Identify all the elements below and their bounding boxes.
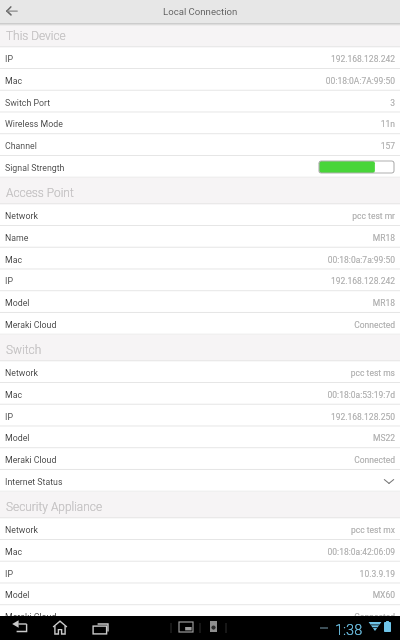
staticText: Mac [5,390,23,400]
button[interactable]: Back [2,0,24,23]
staticText: Network [5,211,38,221]
staticText: Network [5,368,38,378]
staticText: MS22 [0,433,395,443]
button[interactable]: IP [0,269,400,291]
staticText: MR18 [0,233,395,243]
staticText: 00:18:0a:42:06:09 [0,547,395,557]
staticText: Meraki Cloud [5,320,57,330]
staticText: This Device [6,29,66,43]
staticText: IP [5,276,13,286]
staticText: 10.3.9.19 [0,569,395,579]
staticText: Mac [5,547,23,557]
staticText: IP [5,54,13,64]
staticText: Connected [0,612,395,616]
button[interactable]: Meraki Cloud [0,605,400,616]
button[interactable]: Home [48,618,72,638]
button[interactable]: Name [0,226,400,248]
staticText: Channel [5,141,37,151]
staticText: Local Connection [163,6,238,17]
button[interactable]: Meraki Cloud [0,313,400,335]
staticText: Wireless Mode [5,119,63,129]
staticText: pcc test ms [0,368,395,378]
button[interactable]: Internet Status [0,470,400,492]
button[interactable]: Mac [0,383,400,405]
button[interactable]: Network [0,204,400,226]
staticText: Mac [5,255,23,265]
button[interactable]: Recent apps [88,618,112,638]
staticText: Internet Status [5,477,63,487]
staticText: Meraki Cloud [5,612,57,616]
staticText: Connected [0,320,395,330]
staticText: 3 [0,98,395,108]
staticText: 11n [0,119,395,129]
staticText: 192.168.128.242 [0,276,395,286]
button[interactable]: Meraki Cloud [0,448,400,470]
staticText: 1:38 [335,622,363,639]
button[interactable]: Model [0,426,400,448]
staticText: Switch Port [5,98,51,108]
staticText: 192.168.128.250 [0,412,395,422]
staticText: MR18 [0,298,395,308]
other: Expand [384,479,394,484]
staticText: Model [5,433,30,443]
button[interactable]: Switch Port [0,91,400,113]
staticText: MX60 [0,590,395,600]
button[interactable]: Model [0,583,400,605]
staticText: IP [5,569,13,579]
staticText: IP [5,412,13,422]
button[interactable]: IP [0,405,400,427]
button[interactable]: Network [0,518,400,540]
button[interactable]: Signal Strength [0,156,400,178]
staticText: Name [5,233,29,243]
button[interactable]: Channel [0,134,400,156]
staticText: 00:18:0a:53:19:7d [0,390,395,400]
staticText: pcc test mx [0,525,395,535]
staticText: pcc test mr [0,211,395,221]
staticText: Connected [0,455,395,465]
button[interactable]: Back [8,618,32,638]
staticText: Switch [6,343,42,357]
staticText: 192.168.128.242 [0,54,395,64]
button[interactable]: Network [0,361,400,383]
staticText: Mac [5,76,23,86]
button[interactable]: Mac [0,69,400,91]
staticText: Network [5,525,38,535]
staticText: Model [5,590,30,600]
staticText: Security Appliance [6,500,103,514]
button[interactable]: Mac [0,248,400,270]
staticText: Signal Strength [5,163,65,173]
button[interactable]: Wireless Mode [0,112,400,134]
button[interactable]: IP [0,47,400,69]
button[interactable]: IP [0,562,400,584]
button[interactable]: Model [0,291,400,313]
staticText: Access Point [6,186,74,200]
staticText: 157 [0,141,395,151]
staticText: Model [5,298,30,308]
button[interactable]: Mac [0,540,400,562]
staticText: 00:18:0A:7A:99:50 [0,76,395,86]
staticText: 00:18:0a:7a:99:50 [0,255,395,265]
staticText: Meraki Cloud [5,455,57,465]
